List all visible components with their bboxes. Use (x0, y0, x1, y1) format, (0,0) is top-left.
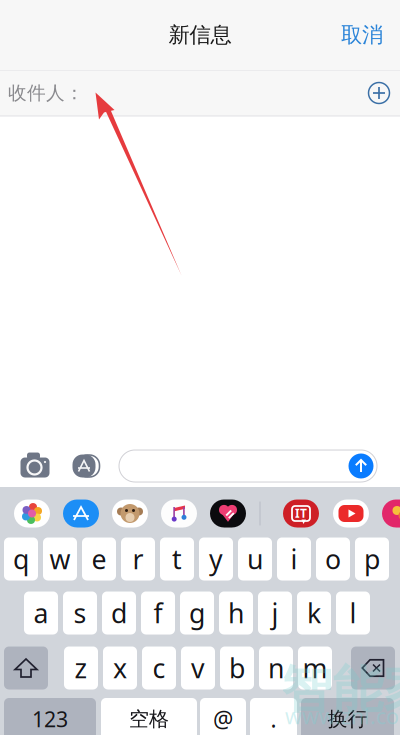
staticText: g (189, 595, 205, 631)
staticText: h (228, 595, 244, 631)
staticText: v (191, 650, 205, 686)
staticText: 智能家 (281, 659, 400, 721)
staticText: r (132, 541, 143, 577)
button[interactable]: a (24, 591, 58, 634)
button[interactable]: v (181, 646, 215, 689)
button[interactable]: u (238, 537, 272, 580)
staticText: b (229, 650, 245, 686)
button[interactable]: m (298, 646, 332, 689)
button[interactable]: n (259, 646, 293, 689)
staticText: u (247, 541, 263, 577)
staticText: f (153, 595, 162, 631)
staticText: @ (213, 704, 233, 734)
button[interactable]: c (142, 646, 176, 689)
button[interactable]: YouTube (333, 499, 369, 527)
button[interactable]: Shift (4, 646, 48, 689)
staticText: IT (295, 505, 307, 521)
button[interactable]: Photos (14, 499, 50, 527)
staticText: x (113, 650, 127, 686)
staticText: p (364, 541, 380, 577)
staticText: d (111, 595, 127, 631)
button[interactable]: 换行 (301, 698, 394, 735)
button[interactable]: s (63, 591, 97, 634)
staticText: k (307, 595, 321, 631)
staticText: 收件人： (8, 81, 84, 104)
button[interactable]: f (141, 591, 175, 634)
staticText: s (73, 595, 86, 631)
button[interactable]: t (160, 537, 194, 580)
button[interactable]: Music (161, 499, 197, 527)
staticText: j (271, 595, 278, 631)
button[interactable]: e (82, 537, 116, 580)
button[interactable]: App Store (69, 453, 99, 479)
button[interactable]: Memoji (112, 499, 148, 527)
staticText: e (91, 541, 106, 577)
staticText: 新信息 (168, 22, 231, 48)
button[interactable]: h (219, 591, 253, 634)
staticText: y (209, 541, 223, 577)
staticText: i (290, 541, 297, 577)
button[interactable]: i (277, 537, 311, 580)
button[interactable]: @ (200, 698, 246, 735)
staticText: m (302, 650, 327, 686)
button[interactable]: w (43, 537, 77, 580)
staticText: 空格 (129, 707, 169, 731)
button[interactable]: App (382, 499, 400, 527)
button[interactable]: y (199, 537, 233, 580)
button[interactable]: r (121, 537, 155, 580)
button[interactable]: Camera (19, 453, 50, 479)
staticText: a (33, 595, 48, 631)
button[interactable]: 取消 (335, 15, 389, 55)
staticText: q (13, 541, 29, 577)
button[interactable]: Add contact (362, 76, 396, 110)
staticText: 取消 (341, 22, 383, 48)
button[interactable]: b (220, 646, 254, 689)
staticText: c (152, 650, 165, 686)
button[interactable]: g (180, 591, 214, 634)
staticText: 换行 (327, 707, 367, 731)
button[interactable]: Delete (351, 646, 395, 689)
button[interactable]: o (316, 537, 350, 580)
staticText: z (74, 650, 87, 686)
button[interactable]: q (4, 537, 38, 580)
button[interactable]: App Store (63, 499, 99, 527)
staticText: o (325, 541, 341, 577)
button[interactable]: . (250, 698, 297, 735)
staticText: l (349, 595, 356, 631)
staticText: t (172, 541, 182, 577)
staticText: 123 (32, 705, 68, 733)
button[interactable]: x (103, 646, 137, 689)
button[interactable]: d (102, 591, 136, 634)
staticText: n (268, 650, 284, 686)
button[interactable]: z (64, 646, 98, 689)
staticText: . (270, 704, 276, 734)
button[interactable]: 空格 (101, 698, 197, 735)
button[interactable]: k (297, 591, 331, 634)
button[interactable]: p (355, 537, 389, 580)
button[interactable]: l (336, 591, 370, 634)
staticText: w (49, 541, 70, 577)
staticText: www.zni.com (285, 702, 400, 730)
button[interactable]: Send (348, 453, 374, 479)
button[interactable]: 123 (4, 698, 96, 735)
button[interactable]: j (258, 591, 292, 634)
button[interactable]: Fitness (210, 499, 246, 527)
button[interactable]: IT (283, 499, 319, 527)
